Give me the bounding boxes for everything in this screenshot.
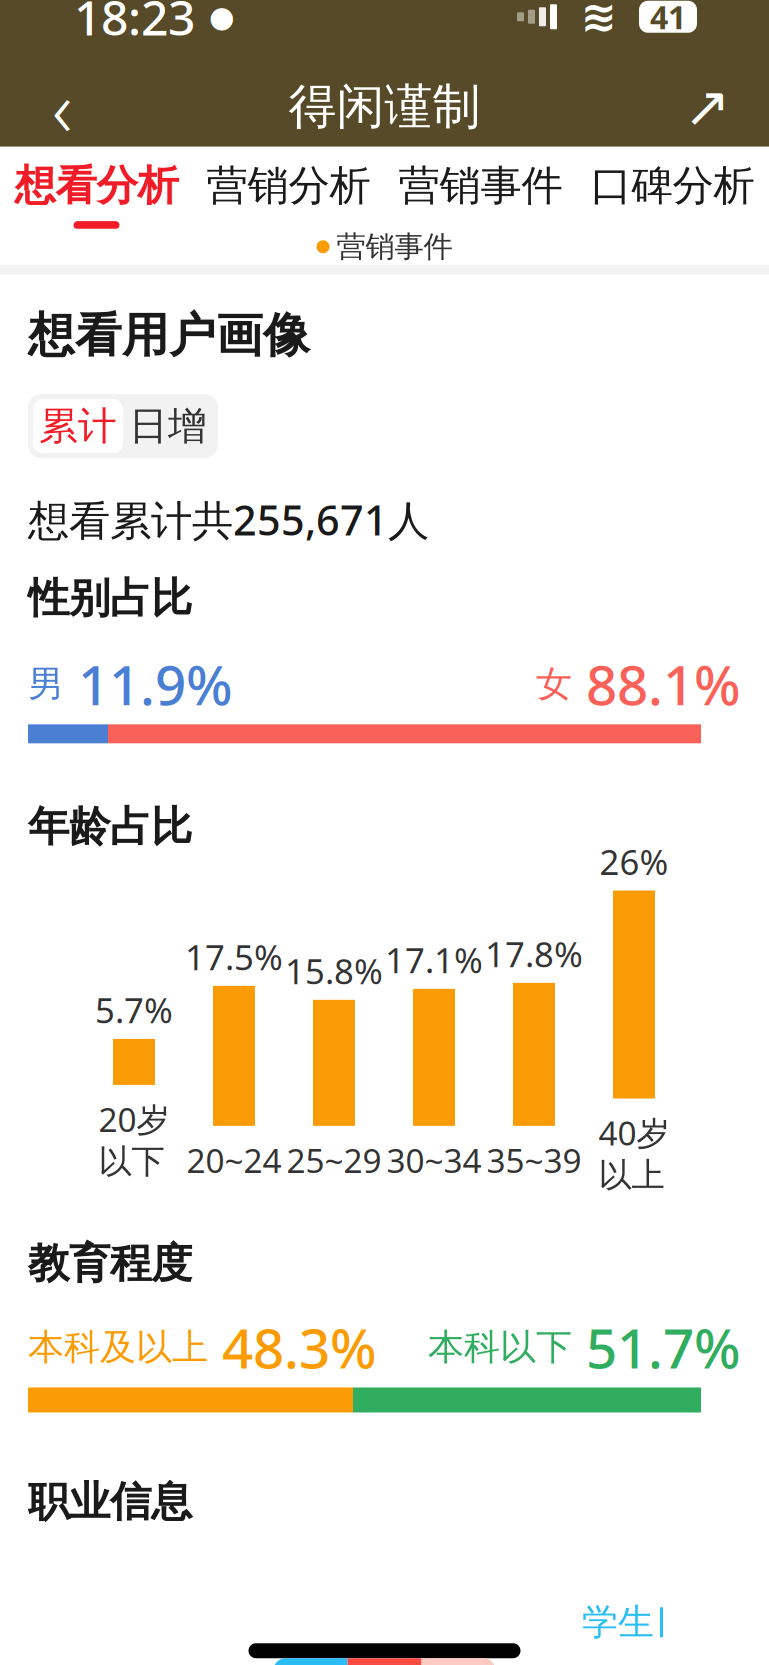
staticText: ↗	[683, 75, 730, 139]
staticText: 17.8%	[485, 931, 583, 977]
staticText: 18:23	[74, 0, 195, 49]
staticText: 本科及以上	[28, 1325, 208, 1369]
staticText: 日增	[129, 402, 207, 450]
staticText: 40岁以上	[598, 1110, 669, 1196]
staticText: 想看分析	[14, 160, 178, 211]
staticText: ≋	[581, 0, 617, 41]
staticText: 35~39	[486, 1138, 581, 1182]
staticText: 5.7%	[95, 987, 173, 1033]
staticText: 年龄占比	[28, 801, 192, 852]
staticText: 职业信息	[28, 1476, 192, 1527]
staticText: 15.8%	[285, 948, 383, 994]
button[interactable]: 分享	[659, 67, 755, 147]
button[interactable]: 日增	[123, 399, 213, 453]
staticText: ‹	[52, 55, 72, 158]
staticText: 想看累计共255,671人	[28, 492, 429, 547]
staticText: 学生	[582, 1600, 654, 1644]
staticText: 男	[28, 662, 64, 706]
staticText: 51.7%	[572, 1311, 741, 1383]
staticText: 想看用户画像	[28, 307, 310, 364]
staticText: 11.9%	[64, 648, 233, 720]
staticText: ●	[209, 0, 235, 33]
staticText: 25~29	[286, 1138, 381, 1182]
staticText: 营销事件	[336, 229, 452, 265]
button[interactable]: 营销事件	[384, 147, 576, 229]
button[interactable]: 口碑分析	[576, 147, 768, 229]
staticText: 41	[650, 0, 686, 38]
button[interactable]: 营销分析	[192, 147, 384, 229]
staticText: 营销事件	[398, 160, 562, 211]
staticText: 17.5%	[185, 934, 283, 980]
button[interactable]: 想看分析	[0, 147, 192, 229]
staticText: 48.3%	[208, 1311, 377, 1383]
staticText: 得闲谨制	[288, 77, 480, 136]
staticText: 88.1%	[572, 648, 741, 720]
staticText: 本科以下	[428, 1325, 572, 1369]
button[interactable]: 返回	[14, 67, 110, 147]
staticText: 女	[536, 662, 572, 706]
staticText: 性别占比	[28, 573, 192, 624]
staticText: 教育程度	[28, 1238, 192, 1289]
staticText: 20岁以下	[98, 1097, 169, 1182]
staticText: 口碑分析	[590, 160, 754, 211]
button[interactable]: 累计	[33, 399, 123, 453]
staticText: 17.1%	[385, 937, 483, 983]
staticText: 30~34	[386, 1138, 481, 1182]
staticText: 营销分析	[206, 160, 370, 211]
staticText: 20~24	[186, 1138, 281, 1182]
staticText: 26%	[599, 838, 668, 884]
staticText: 累计	[39, 402, 117, 450]
